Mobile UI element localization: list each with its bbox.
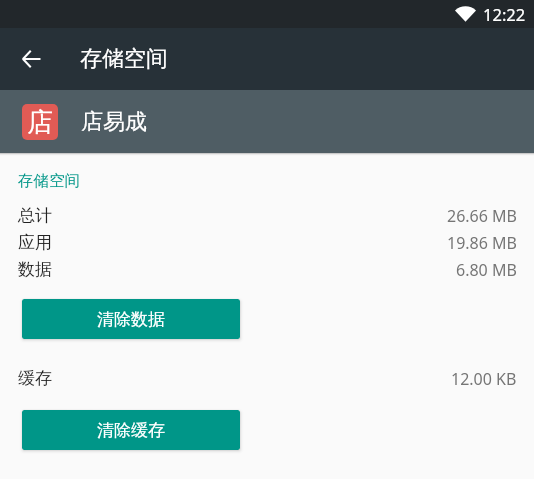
staticText: 缓存 — [18, 368, 52, 389]
staticText: 店 — [27, 106, 53, 139]
staticText: 存储空间 — [80, 45, 168, 73]
staticText: 存储空间 — [18, 171, 80, 191]
button[interactable]: 店 — [0, 90, 534, 153]
staticText: 店易成 — [81, 108, 147, 136]
staticText: 6.80 MB — [456, 259, 517, 281]
staticText: 26.66 MB — [447, 205, 517, 227]
staticText: 19.86 MB — [447, 232, 517, 254]
staticText: 数据 — [18, 259, 52, 280]
staticText: 应用 — [18, 232, 52, 253]
button[interactable]: 清除缓存 — [22, 410, 240, 450]
staticText: 清除缓存 — [97, 420, 165, 441]
staticText: 12.00 KB — [451, 368, 517, 390]
button[interactable]: Back — [0, 28, 62, 90]
staticText: 总计 — [18, 205, 52, 226]
staticText: 12:22 — [483, 3, 526, 25]
button[interactable]: 清除数据 — [22, 299, 240, 339]
staticText: 清除数据 — [97, 309, 165, 330]
